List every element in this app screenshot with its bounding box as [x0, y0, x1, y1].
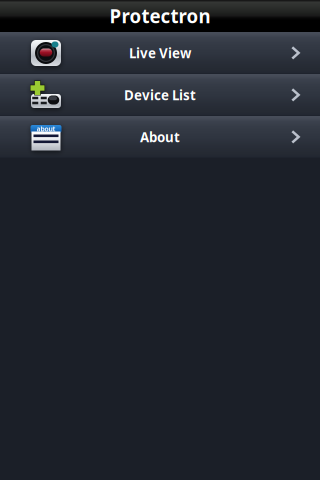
- staticText: about: [36, 125, 55, 133]
- button[interactable]: about: [0, 116, 320, 158]
- button[interactable]: Live View: [0, 32, 320, 74]
- staticText: Protectron: [109, 4, 210, 28]
- staticText: Device List: [124, 86, 196, 104]
- staticText: About: [140, 128, 180, 146]
- button[interactable]: Device List: [0, 74, 320, 116]
- staticText: Live View: [129, 44, 191, 62]
